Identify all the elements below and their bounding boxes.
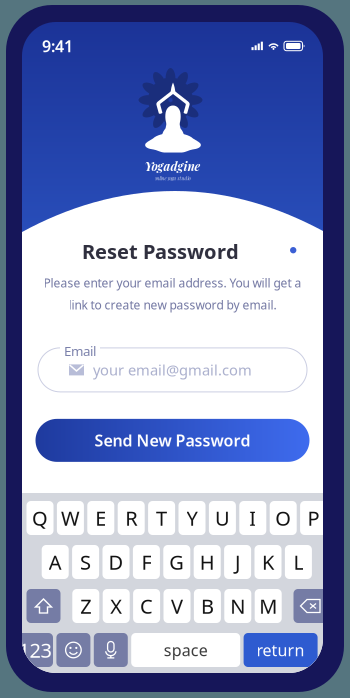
staticText: R bbox=[125, 505, 137, 531]
button[interactable]: I bbox=[239, 501, 266, 535]
button[interactable]: U bbox=[209, 501, 236, 535]
staticText: H bbox=[200, 549, 215, 575]
button[interactable]: L bbox=[285, 545, 312, 579]
button[interactable]: P bbox=[300, 501, 327, 535]
button[interactable]: A bbox=[42, 545, 69, 579]
button[interactable]: Dictation bbox=[94, 633, 128, 667]
staticText: W bbox=[61, 505, 80, 531]
button[interactable]: Delete bbox=[293, 589, 327, 623]
staticText: Email bbox=[64, 342, 96, 360]
button[interactable]: Shift bbox=[26, 589, 60, 623]
staticText: E bbox=[95, 505, 106, 531]
button[interactable]: space bbox=[131, 633, 240, 667]
button[interactable]: T bbox=[148, 501, 175, 535]
button[interactable]: O bbox=[270, 501, 297, 535]
staticText: Y bbox=[186, 505, 197, 531]
staticText: Reset Password bbox=[82, 238, 239, 265]
button[interactable]: M bbox=[255, 589, 282, 623]
staticText: M bbox=[259, 593, 277, 619]
button[interactable]: D bbox=[102, 545, 129, 579]
button[interactable]: F bbox=[133, 545, 160, 579]
staticText: U bbox=[215, 505, 230, 531]
button[interactable]: S bbox=[72, 545, 99, 579]
staticText: I bbox=[249, 505, 256, 531]
staticText: S bbox=[80, 549, 91, 575]
button[interactable]: G bbox=[163, 545, 190, 579]
button[interactable]: Z bbox=[72, 589, 99, 623]
button[interactable]: 123 bbox=[17, 633, 53, 667]
staticText: P bbox=[308, 505, 320, 531]
button[interactable]: C bbox=[133, 589, 160, 623]
staticText: T bbox=[156, 505, 167, 531]
staticText: Please enter your email address. You wil… bbox=[43, 275, 301, 291]
button[interactable]: N bbox=[224, 589, 251, 623]
staticText: B bbox=[201, 593, 214, 619]
staticText: Send New Password bbox=[94, 430, 250, 451]
staticText: C bbox=[140, 593, 153, 619]
staticText: V bbox=[171, 593, 183, 619]
staticText: N bbox=[230, 593, 245, 619]
staticText: Z bbox=[80, 593, 91, 619]
staticText: X bbox=[110, 593, 122, 619]
staticText: link to create new password by email. bbox=[68, 297, 276, 313]
staticText: Yogadgine bbox=[144, 158, 200, 174]
button[interactable]: Send New Password bbox=[35, 419, 309, 462]
staticText: L bbox=[293, 549, 303, 575]
button[interactable]: Q bbox=[26, 501, 53, 535]
button[interactable]: H bbox=[194, 545, 221, 579]
staticText: G bbox=[169, 549, 184, 575]
staticText: K bbox=[262, 549, 274, 575]
staticText: A bbox=[49, 549, 62, 575]
staticText: online yoga studio bbox=[154, 175, 190, 181]
button[interactable]: B bbox=[194, 589, 221, 623]
button[interactable]: R bbox=[118, 501, 145, 535]
button[interactable]: J bbox=[224, 545, 251, 579]
button[interactable]: K bbox=[254, 545, 281, 579]
staticText: return bbox=[257, 639, 305, 661]
button[interactable]: return bbox=[244, 633, 318, 667]
staticText: J bbox=[235, 549, 240, 575]
button[interactable]: V bbox=[163, 589, 190, 623]
staticText: space bbox=[164, 639, 208, 661]
staticText: 9:41 bbox=[42, 35, 73, 57]
button[interactable]: E bbox=[87, 501, 114, 535]
staticText: your email@gmail.com bbox=[93, 360, 252, 380]
staticText: D bbox=[108, 549, 123, 575]
staticText: 123 bbox=[18, 637, 51, 663]
staticText: O bbox=[275, 505, 291, 531]
button[interactable]: X bbox=[103, 589, 130, 623]
button[interactable]: Y bbox=[178, 501, 205, 535]
button[interactable]: Emoji bbox=[56, 633, 90, 667]
staticText: F bbox=[141, 549, 151, 575]
button[interactable]: W bbox=[57, 501, 84, 535]
staticText: Q bbox=[32, 505, 48, 531]
